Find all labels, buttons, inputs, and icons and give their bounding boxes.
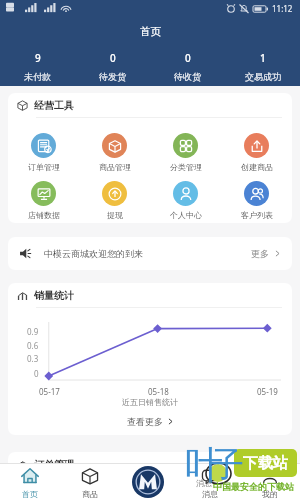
button[interactable]: 消息 bbox=[188, 464, 232, 500]
button[interactable]: 中模云商城 bbox=[132, 466, 164, 498]
button[interactable]: 商品管理 bbox=[79, 133, 150, 172]
staticText: 待发货 bbox=[99, 71, 126, 82]
button[interactable]: 商品 bbox=[68, 464, 112, 500]
staticText: 商品管理 bbox=[99, 162, 131, 172]
staticText: 0.6 bbox=[27, 340, 39, 351]
staticText: 05-19 bbox=[257, 386, 278, 396]
staticText: 个人中心 bbox=[170, 210, 202, 220]
button[interactable]: 0 bbox=[150, 50, 225, 82]
staticText: 0 bbox=[185, 51, 191, 65]
staticText: 0 bbox=[110, 51, 116, 65]
button[interactable]: 首页 bbox=[8, 464, 52, 500]
button[interactable]: 分类管理 bbox=[150, 133, 221, 172]
staticText: 下载站 bbox=[243, 454, 288, 473]
button[interactable]: 店铺数据 bbox=[8, 181, 79, 220]
button[interactable]: 提现 bbox=[79, 181, 150, 220]
staticText: 订单管理 bbox=[34, 458, 74, 471]
staticText: 我的 bbox=[262, 489, 278, 499]
staticText: 子 bbox=[210, 443, 244, 486]
staticText: 05-18 bbox=[148, 386, 169, 396]
staticText: 0 bbox=[34, 368, 39, 379]
button[interactable]: 0 bbox=[75, 50, 150, 82]
staticText: 待收货 bbox=[174, 71, 201, 82]
staticText: 近五日销售统计 bbox=[122, 397, 178, 407]
button[interactable]: 客户列表 bbox=[221, 181, 292, 220]
staticText: 销量统计 bbox=[34, 289, 74, 302]
button[interactable]: 创建商品 bbox=[221, 133, 292, 172]
staticText: 查看更多 bbox=[127, 416, 163, 427]
staticText: 提现 bbox=[107, 210, 123, 220]
staticText: 0.3 bbox=[27, 353, 39, 364]
staticText: 首页 bbox=[22, 489, 38, 499]
staticText: 消息 bbox=[202, 489, 218, 499]
staticText: 店铺数据 bbox=[28, 210, 60, 220]
staticText: 更多 bbox=[251, 248, 269, 259]
staticText: 中模云商城欢迎您的到来 bbox=[44, 248, 143, 259]
staticText: 11:12 bbox=[272, 3, 293, 14]
staticText: 分类管理 bbox=[170, 162, 202, 172]
button[interactable]: 查看更多 bbox=[8, 411, 292, 431]
staticText: 商品 bbox=[82, 489, 98, 499]
button[interactable]: 我的 bbox=[248, 464, 292, 500]
button[interactable]: 中模云商城欢迎您的到来 bbox=[8, 237, 292, 270]
staticText: 客户列表 bbox=[241, 210, 273, 220]
staticText: 交易成功 bbox=[245, 71, 281, 82]
staticText: 9 bbox=[35, 51, 41, 65]
staticText: 05-17 bbox=[39, 386, 60, 396]
button[interactable]: 9 bbox=[0, 50, 75, 82]
staticText: 经营工具 bbox=[34, 99, 74, 112]
staticText: 1 bbox=[260, 51, 266, 65]
button[interactable]: 1 bbox=[225, 50, 300, 82]
staticText: 0.9 bbox=[27, 326, 39, 337]
staticText: 首页 bbox=[140, 25, 161, 38]
staticText: 创建商品 bbox=[241, 162, 273, 172]
staticText: 叶 bbox=[185, 441, 223, 489]
staticText: 订单管理 bbox=[28, 162, 60, 172]
staticText: 未付款 bbox=[24, 71, 51, 82]
staticText: 中国最安全的下载站 bbox=[213, 481, 294, 492]
staticText: 消息 bbox=[196, 478, 212, 488]
button[interactable]: 个人中心 bbox=[150, 181, 221, 220]
button[interactable]: 订单管理 bbox=[8, 133, 79, 172]
